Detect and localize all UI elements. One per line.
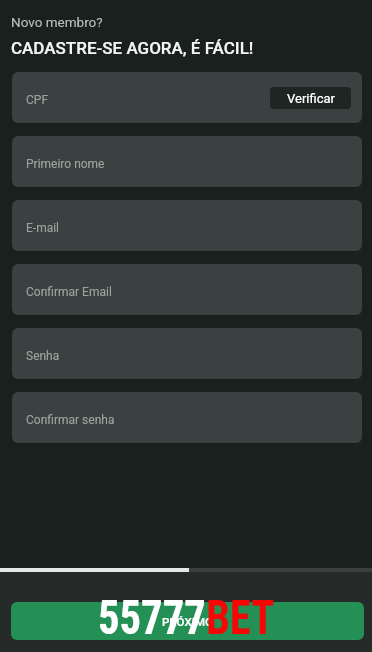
button[interactable]: Confirmar senha bbox=[12, 392, 362, 443]
button[interactable]: Primeiro nome bbox=[12, 136, 362, 187]
button[interactable]: Senha bbox=[12, 328, 362, 379]
button[interactable]: CPF bbox=[12, 72, 362, 123]
staticText: PRÓXIMO bbox=[162, 615, 213, 628]
staticText: Senha bbox=[26, 349, 60, 363]
staticText: 55777 bbox=[98, 589, 206, 646]
staticText: CADASTRE-SE AGORA, É FÁCIL! bbox=[11, 38, 254, 58]
staticText: Verificar bbox=[287, 91, 335, 106]
button[interactable]: E-mail bbox=[12, 200, 362, 251]
staticText: Confirmar senha bbox=[26, 413, 115, 427]
staticText: BET bbox=[206, 589, 275, 646]
button[interactable]: Verificar bbox=[270, 87, 351, 109]
staticText: Primeiro nome bbox=[26, 157, 105, 171]
staticText: Confirmar Email bbox=[26, 285, 112, 299]
staticText: Novo membro? bbox=[11, 14, 103, 30]
staticText: E-mail bbox=[26, 221, 60, 235]
staticText: CPF bbox=[26, 93, 49, 107]
button[interactable]: PRÓXIMO bbox=[11, 602, 364, 640]
button[interactable]: Confirmar Email bbox=[12, 264, 362, 315]
